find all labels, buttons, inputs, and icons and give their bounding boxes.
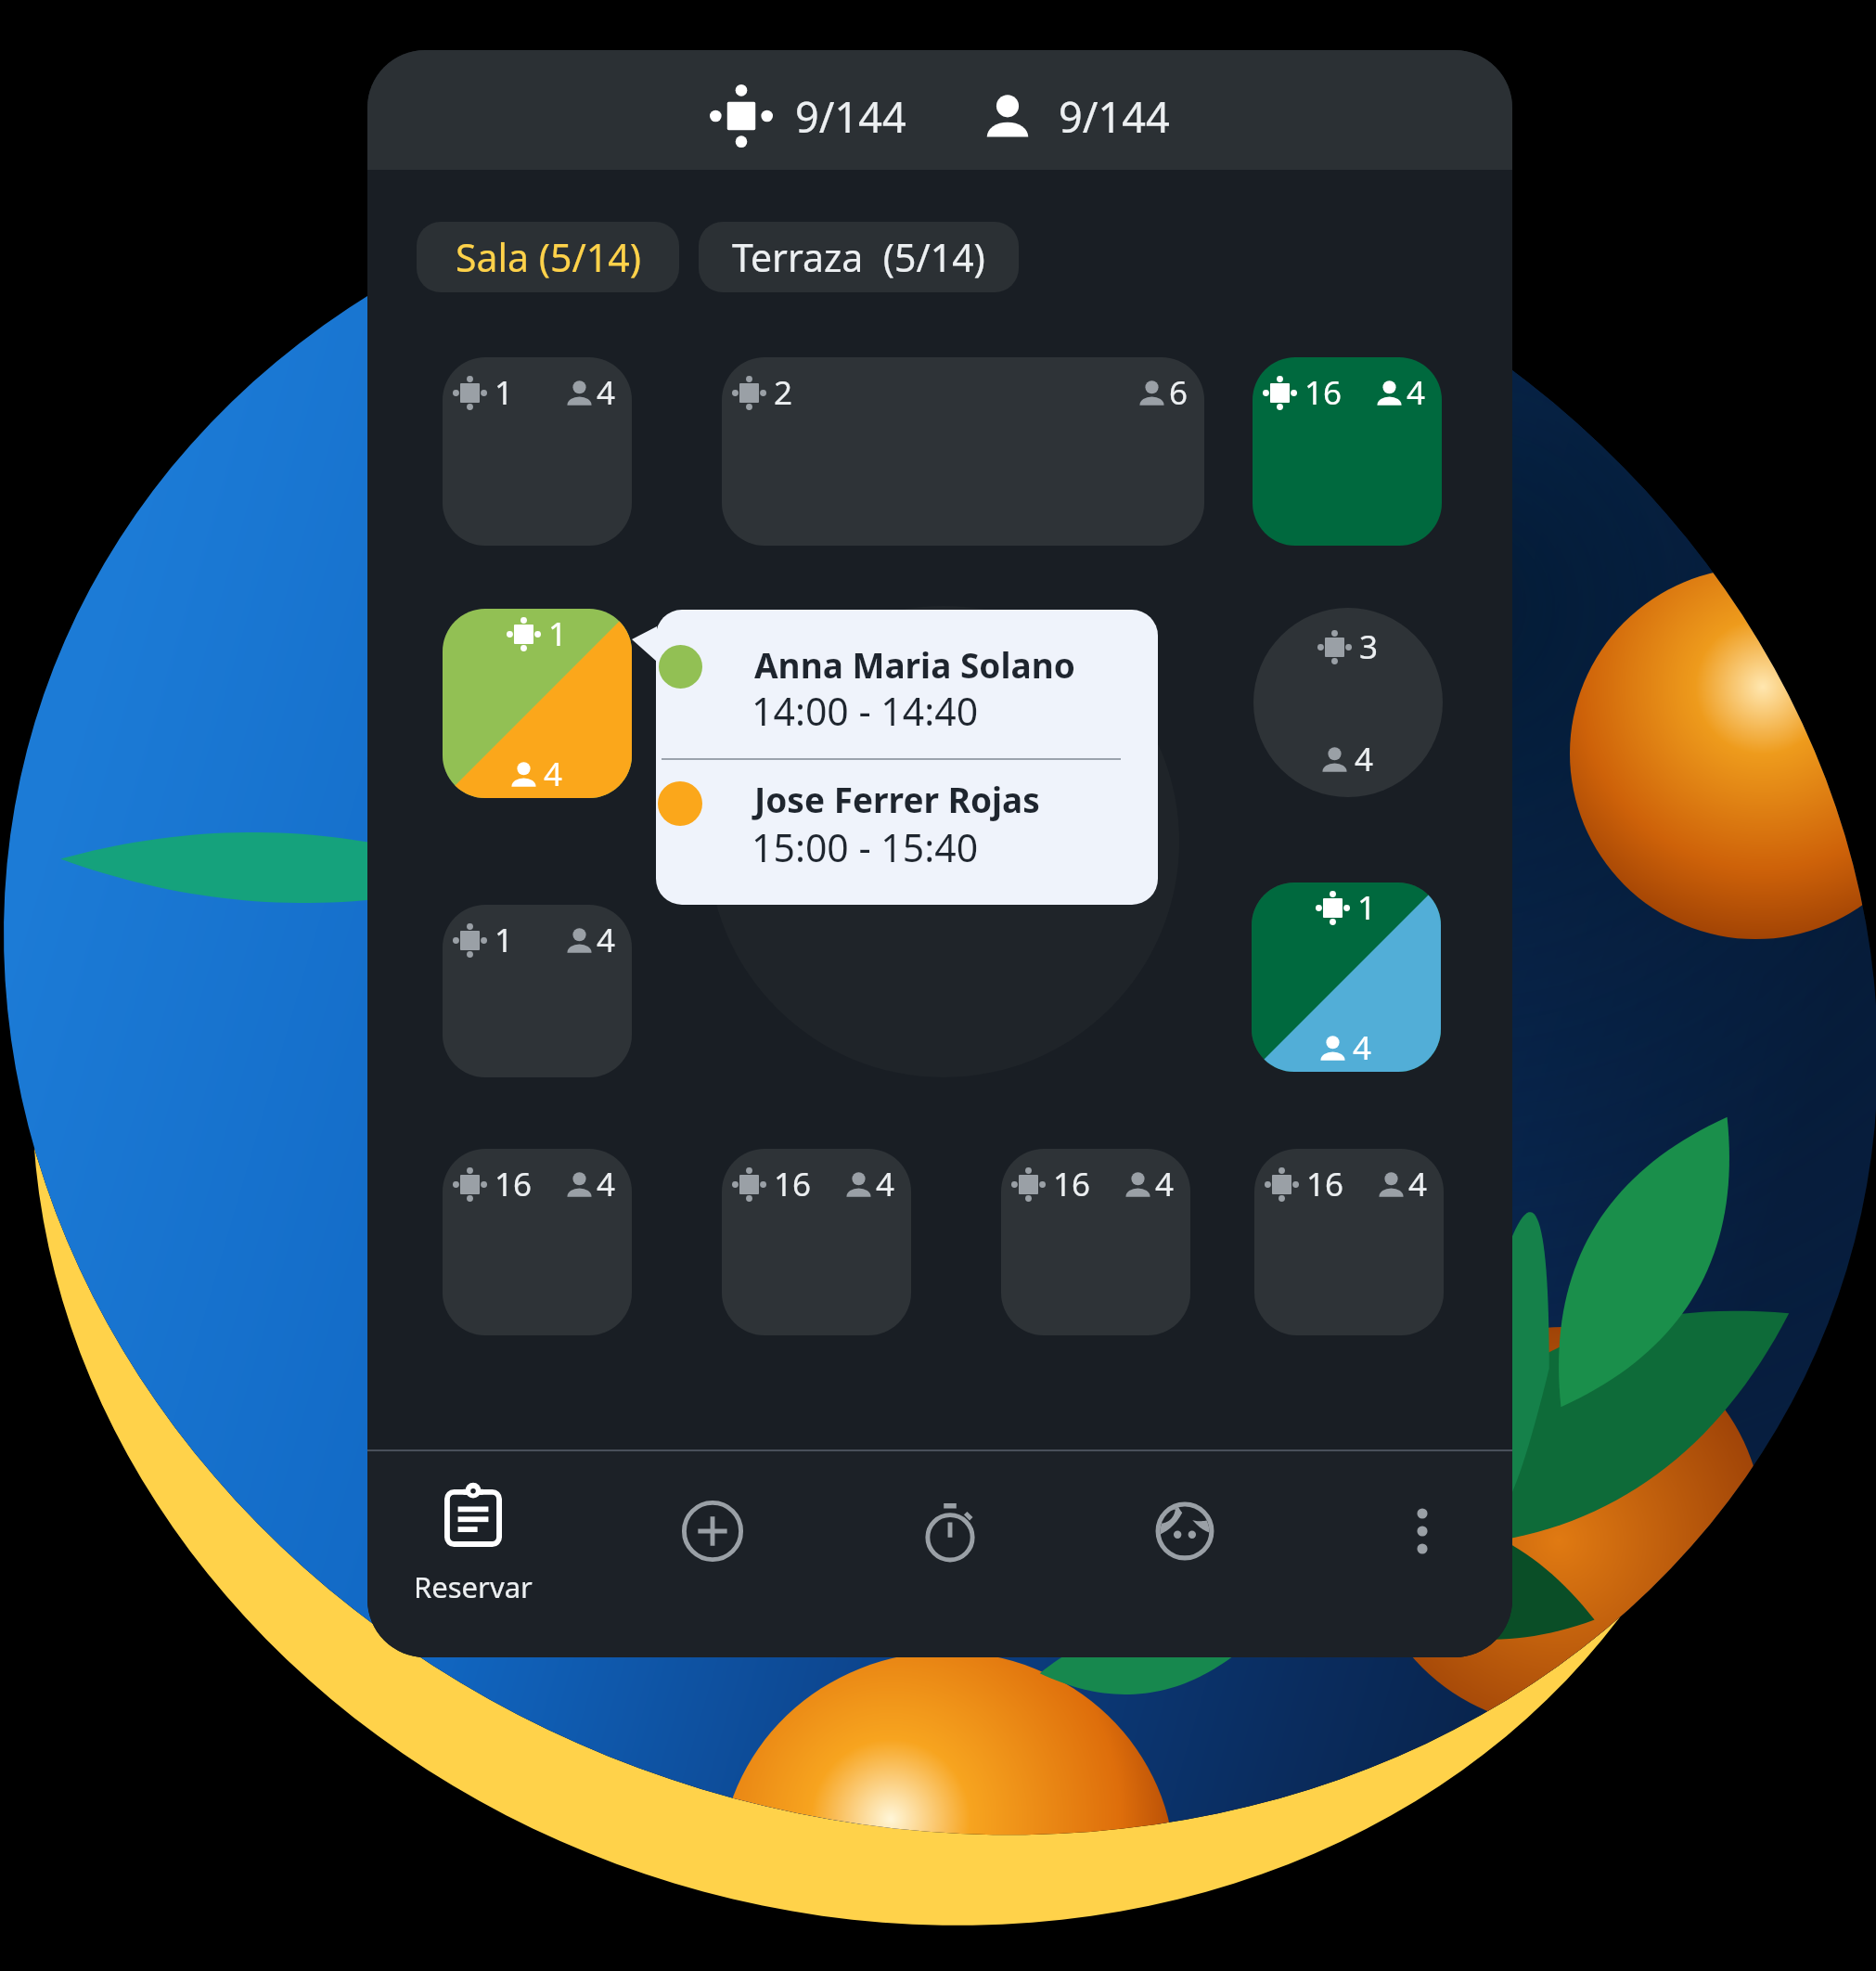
button[interactable]: 16 xyxy=(1254,1149,1444,1335)
button[interactable]: 16 xyxy=(1001,1149,1190,1335)
button[interactable]: 1 xyxy=(443,905,632,1077)
button[interactable]: 1 xyxy=(443,609,632,798)
staticText: 16 xyxy=(495,1162,533,1206)
staticText: 14:00 - 14:40 xyxy=(752,685,979,737)
button[interactable]: Más opciones xyxy=(1390,1499,1455,1564)
button[interactable]: 2 xyxy=(722,357,1204,546)
staticText: Sala (5/14) xyxy=(456,231,641,283)
staticText: 16 xyxy=(1304,370,1343,415)
staticText: 4 xyxy=(1353,1025,1372,1070)
staticText: 4 xyxy=(597,918,616,962)
button[interactable]: 3 xyxy=(1253,608,1443,797)
button[interactable]: Timer xyxy=(918,1499,983,1564)
button[interactable]: Add xyxy=(680,1499,745,1564)
button[interactable]: Terraza (5/14) xyxy=(699,222,1019,292)
staticText: Reservar xyxy=(414,1567,533,1606)
staticText: 4 xyxy=(597,370,616,415)
staticText: 16 xyxy=(774,1162,812,1206)
staticText: 16 xyxy=(1053,1162,1091,1206)
button[interactable]: 1 xyxy=(443,357,632,546)
staticText: 9/144 xyxy=(795,88,906,145)
staticText: 4 xyxy=(1407,370,1426,415)
staticText: 4 xyxy=(1408,1162,1428,1206)
staticText: Jose Ferrer Rojas xyxy=(754,776,1040,822)
button[interactable]: 1 xyxy=(1252,882,1441,1072)
button[interactable]: Perfil xyxy=(1152,1499,1217,1564)
staticText: 1 xyxy=(548,612,568,656)
staticText: 4 xyxy=(876,1162,895,1206)
staticText: Anna Maria Solano xyxy=(754,641,1075,688)
staticText: 4 xyxy=(1355,737,1374,781)
staticText: Terraza (5/14) xyxy=(732,231,985,283)
staticText: 3 xyxy=(1359,625,1379,669)
staticText: 1 xyxy=(495,918,514,962)
button[interactable]: Reservar xyxy=(390,1484,557,1606)
button[interactable]: 16 xyxy=(722,1149,911,1335)
button[interactable]: Mesa redonda grande xyxy=(708,606,1179,1077)
staticText: 1 xyxy=(1357,885,1377,930)
staticText: 15:00 - 15:40 xyxy=(752,821,979,873)
button[interactable]: Sala (5/14) xyxy=(417,222,679,292)
staticText: 16 xyxy=(1306,1162,1344,1206)
staticText: 1 xyxy=(495,370,514,415)
staticText: 4 xyxy=(544,752,563,796)
staticText: 9/144 xyxy=(1059,88,1170,145)
staticText: 4 xyxy=(1155,1162,1175,1206)
staticText: 2 xyxy=(774,370,793,415)
button[interactable]: 16 xyxy=(443,1149,632,1335)
staticText: 4 xyxy=(597,1162,616,1206)
button[interactable]: 16 xyxy=(1253,357,1442,546)
staticText: 6 xyxy=(1169,370,1189,415)
